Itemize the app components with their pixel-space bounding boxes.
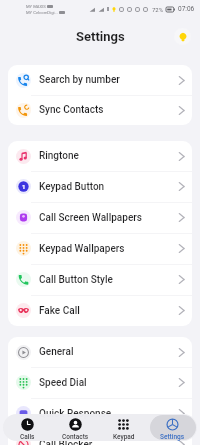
button[interactable]: Ringtone [8, 141, 192, 171]
button[interactable]: Quick Response [8, 398, 192, 429]
button[interactable]: Contacts [51, 414, 99, 441]
button[interactable]: 1 [8, 171, 192, 202]
button[interactable]: Keypad Wallpapers [8, 233, 192, 264]
staticText: Keypad Wallpapers [39, 243, 125, 255]
staticText: Settings [160, 433, 185, 441]
staticText: MY CelcomDigi... [26, 10, 58, 15]
button[interactable]: Speed Dial [8, 367, 192, 398]
staticText: MY MAXIS [26, 4, 46, 9]
staticText: 07:06 [178, 5, 195, 13]
button[interactable]: Call Screen Wallpapers [8, 202, 192, 233]
button[interactable]: Search by number [8, 65, 192, 95]
staticText: Call Screen Wallpapers [39, 212, 142, 224]
staticText: Speed Dial [39, 377, 87, 389]
staticText: Settings [76, 29, 125, 44]
button[interactable]: Call Blocker [8, 429, 192, 445]
button[interactable]: Fake Call [8, 295, 192, 326]
button[interactable]: Call Button Style [8, 264, 192, 295]
staticText: Contacts [62, 433, 89, 441]
staticText: Quick Response [39, 408, 112, 420]
staticText: General [39, 346, 74, 358]
staticText: Search by number [39, 74, 120, 86]
button[interactable]: Sync Contacts [8, 95, 192, 125]
button[interactable]: Calls [3, 414, 51, 441]
staticText: Keypad [113, 433, 135, 441]
button[interactable]: Keypad [99, 414, 148, 441]
staticText: Call Button Style [39, 274, 113, 286]
button[interactable]: General [8, 337, 192, 367]
button[interactable]: Tips [174, 28, 191, 45]
staticText: Keypad Button [39, 181, 105, 193]
staticText: Fake Call [39, 305, 80, 317]
staticText: 1 [22, 183, 26, 190]
staticText: Calls [20, 433, 35, 441]
button[interactable]: Settings [148, 414, 197, 441]
staticText: Ringtone [39, 150, 79, 162]
staticText: 72% [152, 6, 164, 13]
staticText: Sync Contacts [39, 104, 104, 116]
staticText: Call Blocker [39, 439, 93, 445]
